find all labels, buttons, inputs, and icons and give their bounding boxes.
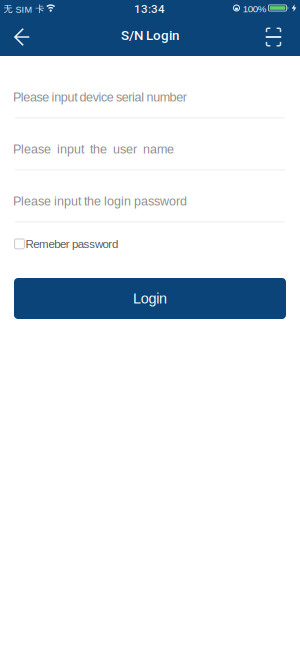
staticText: 13:34	[134, 2, 165, 16]
staticText: Please input device serial number	[13, 90, 187, 104]
staticText: Please input the login password	[13, 194, 187, 208]
button[interactable]: Please input device serial number	[13, 90, 283, 104]
staticText: Please input the user name	[13, 142, 174, 156]
button[interactable]: Please input the login password	[13, 194, 283, 208]
staticText: Login	[133, 290, 167, 307]
staticText: 100%	[243, 4, 267, 14]
button[interactable]: Scan QR code	[251, 18, 295, 56]
staticText: Remeber password	[25, 237, 118, 250]
staticText: 无 SIM 卡	[3, 3, 44, 15]
button[interactable]: Please input the user name	[13, 142, 283, 156]
staticText: S/N Login	[121, 28, 179, 43]
button[interactable]: Back	[0, 18, 44, 56]
button[interactable]: Login	[14, 278, 286, 319]
button[interactable]: Remeber password	[14, 237, 118, 250]
